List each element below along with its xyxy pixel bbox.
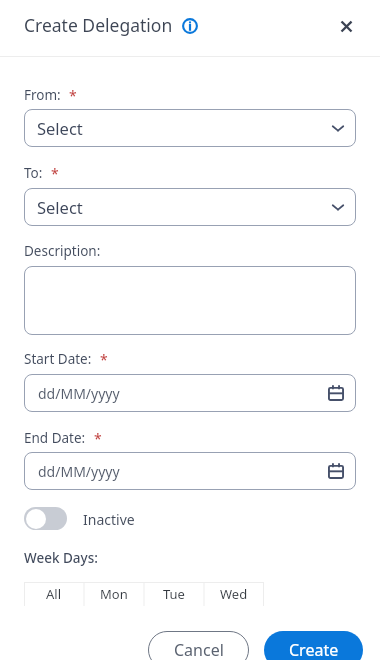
staticText: *	[69, 86, 77, 105]
button[interactable]: dd/MM/yyyy	[24, 452, 356, 490]
staticText: Mon	[100, 585, 128, 603]
staticText: Description:	[24, 242, 101, 260]
staticText: *	[100, 350, 108, 369]
button[interactable]: Wed	[204, 582, 264, 606]
staticText: All	[46, 585, 62, 603]
staticText: Select	[37, 117, 83, 139]
staticText: Create Delegation	[24, 13, 173, 37]
staticText: Select	[37, 196, 83, 218]
button[interactable]: Create	[264, 631, 363, 660]
button[interactable]: Select	[24, 109, 356, 147]
staticText: Wed	[220, 585, 248, 603]
staticText: End Date:	[24, 429, 86, 447]
button[interactable]: Inactive	[24, 507, 135, 530]
staticText: Week Days:	[24, 549, 98, 567]
staticText: Inactive	[83, 510, 135, 529]
button[interactable]: dd/MM/yyyy	[24, 374, 356, 412]
staticText: *	[94, 429, 102, 448]
button[interactable]: Information	[177, 13, 203, 39]
staticText: Create	[289, 639, 339, 660]
button[interactable]: Mon	[84, 582, 144, 606]
staticText: Tue	[163, 585, 185, 603]
staticText: Start Date:	[24, 350, 92, 368]
staticText: dd/MM/yyyy	[38, 384, 120, 403]
staticText: From:	[24, 86, 61, 104]
button[interactable]: All	[24, 582, 84, 606]
button[interactable]: Close	[331, 11, 361, 41]
button[interactable]	[24, 266, 356, 335]
staticText: Cancel	[174, 639, 224, 660]
button[interactable]: Tue	[144, 582, 204, 606]
button[interactable]: Select	[24, 188, 356, 226]
staticText: *	[51, 164, 59, 183]
button[interactable]: Cancel	[148, 631, 249, 660]
staticText: To:	[24, 164, 43, 182]
staticText: dd/MM/yyyy	[38, 462, 120, 481]
